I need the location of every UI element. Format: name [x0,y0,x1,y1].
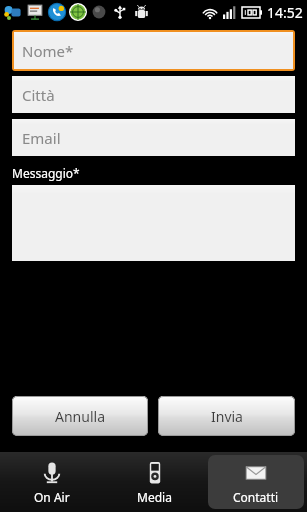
staticText: Media [137,489,172,505]
staticText: Contatti [233,489,279,505]
button[interactable]: Contatti [208,455,304,509]
staticText: On Air [34,489,70,505]
button[interactable]: On Air [3,455,100,509]
button[interactable]: Annulla [12,396,148,436]
button[interactable]: Email [12,119,295,156]
staticText: Invia [211,407,243,426]
button[interactable]: Città [12,76,295,113]
staticText: Email [22,128,61,148]
button[interactable]: Invia [158,396,295,436]
staticText: Nome* [22,41,74,61]
staticText: 14:52 [267,3,303,22]
button[interactable]: Nome* [14,32,293,69]
staticText: Città [22,85,55,105]
staticText: Annulla [55,407,105,426]
staticText: Messaggio* [12,165,80,181]
button[interactable]: Media [106,455,202,509]
